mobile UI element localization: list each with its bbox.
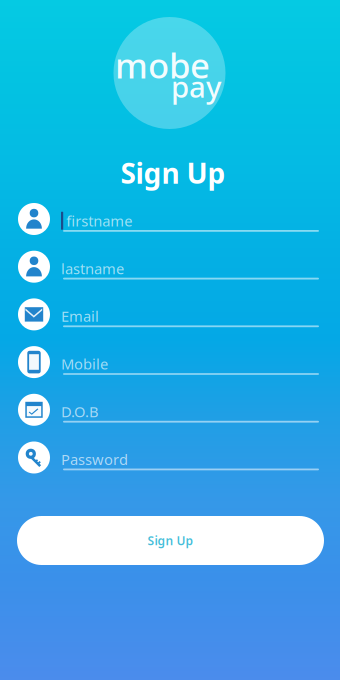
staticText: mobe <box>115 42 210 88</box>
staticText: Mobile <box>61 354 108 374</box>
staticText: Password <box>61 449 128 469</box>
staticText: pay <box>171 67 221 106</box>
button[interactable]: lastname <box>17 249 319 286</box>
button[interactable]: D.O.B <box>17 392 319 429</box>
button[interactable]: Password <box>17 439 319 476</box>
button[interactable]: Mobile <box>17 344 319 381</box>
staticText: D.O.B <box>61 402 99 421</box>
button[interactable]: Email <box>17 296 319 333</box>
button[interactable]: Sign Up <box>17 516 324 565</box>
staticText: Sign Up <box>147 532 193 548</box>
staticText: firstname <box>66 211 132 230</box>
staticText: lastname <box>61 259 124 278</box>
staticText: Email <box>61 306 99 326</box>
staticText: Sign Up <box>120 154 225 192</box>
button[interactable]: firstname <box>17 201 319 238</box>
